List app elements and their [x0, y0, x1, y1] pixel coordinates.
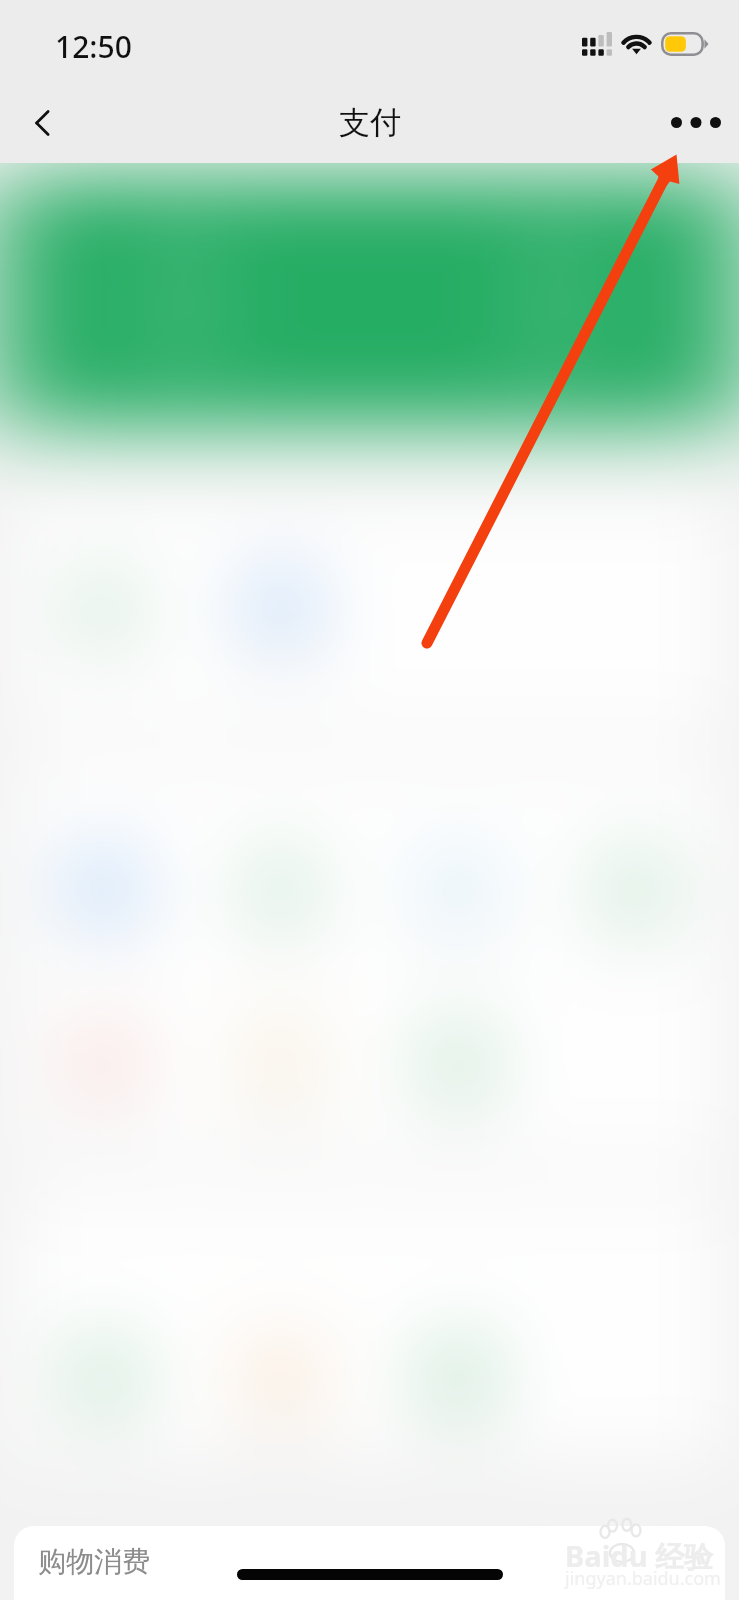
staticText: 支付	[339, 103, 401, 142]
staticText: jingyan.baidu.com	[565, 1566, 721, 1591]
staticText: Baidu 经验	[565, 1536, 714, 1576]
button[interactable]: 购物消费	[14, 1526, 725, 1600]
button[interactable]: More options	[653, 82, 739, 163]
staticText: 购物消费	[38, 1544, 150, 1579]
other: Annotation arrow	[0, 0, 739, 1600]
button[interactable]: Back	[0, 82, 86, 163]
staticText: 12:50	[55, 26, 132, 67]
